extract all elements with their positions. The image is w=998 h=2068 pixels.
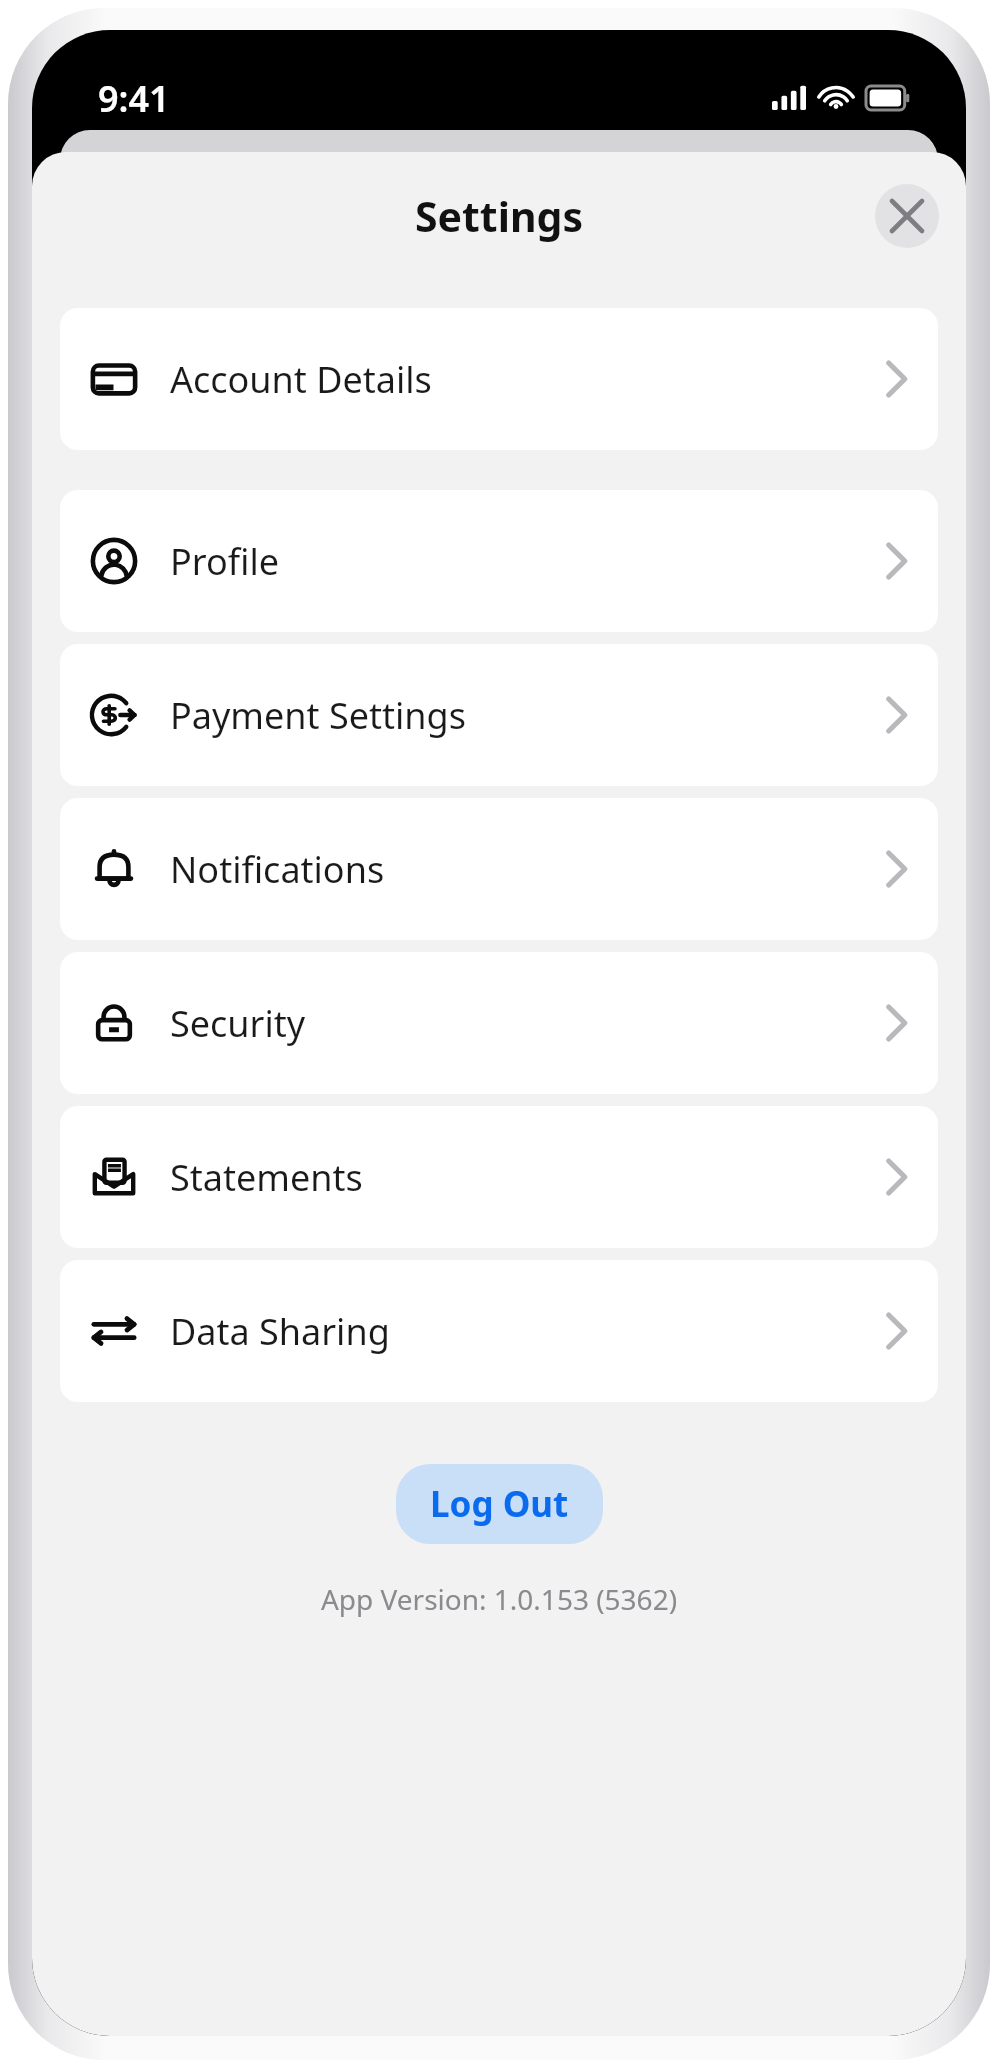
staticText: Data Sharing <box>170 1307 884 1356</box>
button[interactable]: Profile <box>60 490 938 632</box>
button[interactable]: Account Details <box>60 308 938 450</box>
staticText: Settings <box>415 188 584 244</box>
staticText: 9:41 <box>98 74 170 123</box>
staticText: Statements <box>170 1153 884 1202</box>
staticText: Log Out <box>430 1480 569 1528</box>
staticText: Security <box>170 999 884 1048</box>
staticText: Account Details <box>170 355 884 404</box>
button[interactable]: Security <box>60 952 938 1094</box>
staticText: Notifications <box>170 845 884 894</box>
staticText: App Version: 1.0.153 (5362) <box>32 1580 966 1618</box>
button[interactable]: Close <box>875 184 939 248</box>
staticText: Payment Settings <box>170 691 884 740</box>
button[interactable]: Notifications <box>60 798 938 940</box>
button[interactable]: Log Out <box>396 1464 603 1544</box>
button[interactable]: Payment Settings <box>60 644 938 786</box>
staticText: Profile <box>170 537 884 586</box>
button[interactable]: Statements <box>60 1106 938 1248</box>
button[interactable]: Data Sharing <box>60 1260 938 1402</box>
